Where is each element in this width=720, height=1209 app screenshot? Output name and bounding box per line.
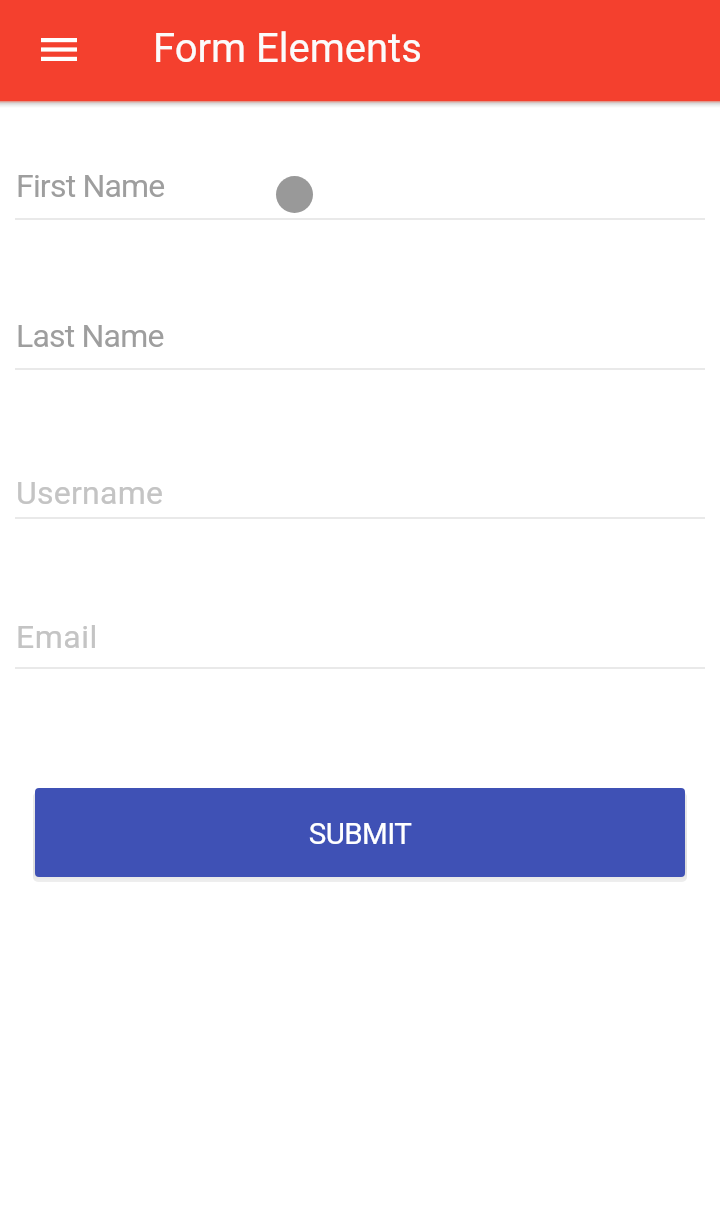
staticText: Form Elements: [153, 25, 422, 72]
staticText: SUBMIT: [35, 817, 685, 852]
button[interactable]: Open navigation menu: [24, 14, 94, 84]
button[interactable]: [0, 452, 720, 520]
button[interactable]: [0, 600, 720, 668]
staticText: First Name: [16, 167, 165, 205]
staticText: Last Name: [16, 317, 164, 355]
button[interactable]: SUBMIT: [35, 788, 685, 877]
staticText: Email: [16, 618, 98, 656]
button[interactable]: [0, 150, 720, 220]
staticText: Username: [16, 474, 164, 512]
button[interactable]: [0, 300, 720, 370]
